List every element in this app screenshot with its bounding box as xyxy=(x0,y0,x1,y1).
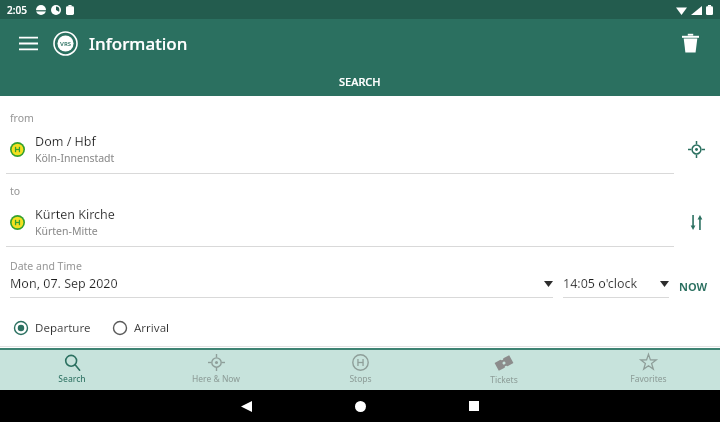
staticText: VRS xyxy=(60,40,72,48)
staticText: to xyxy=(10,184,21,198)
button[interactable]: Recent apps xyxy=(454,390,494,422)
button[interactable]: Dom / Hbf xyxy=(0,127,720,173)
button[interactable]: Arrival xyxy=(111,316,172,340)
button[interactable]: Kürten Kirche xyxy=(0,200,720,246)
staticText: 14:05 o'clock xyxy=(563,275,638,292)
button[interactable]: Use current location xyxy=(676,129,716,169)
button[interactable]: Swap origin and destination xyxy=(676,202,716,242)
staticText: Search xyxy=(58,373,86,385)
button[interactable]: Home xyxy=(340,390,380,422)
staticText: Departure xyxy=(35,320,91,336)
button[interactable]: Clear xyxy=(670,23,710,63)
staticText: from xyxy=(10,111,34,125)
staticText: Tickets xyxy=(490,374,518,386)
staticText: 2:05 xyxy=(7,3,27,17)
button[interactable]: NOW xyxy=(669,279,710,294)
button[interactable]: Search xyxy=(0,350,144,390)
staticText: Arrival xyxy=(134,320,170,336)
staticText: Dom / Hbf xyxy=(35,133,96,150)
button[interactable]: Mon, 07. Sep 2020 xyxy=(10,275,553,292)
button[interactable]: SEARCH xyxy=(0,67,720,99)
staticText: Kürten-Mitte xyxy=(35,224,98,238)
button[interactable]: 14:05 o'clock xyxy=(563,275,669,292)
staticText: NOW xyxy=(679,279,708,294)
staticText: Mon, 07. Sep 2020 xyxy=(10,275,118,292)
button[interactable]: Tickets xyxy=(432,350,576,390)
staticText: Here & Now xyxy=(192,373,240,385)
staticText: Information xyxy=(89,32,188,55)
staticText: Stops xyxy=(349,373,372,385)
button[interactable]: Favorites xyxy=(576,350,720,390)
staticText: SEARCH xyxy=(339,74,381,89)
button[interactable]: Back xyxy=(226,390,266,422)
staticText: Date and Time xyxy=(10,259,82,273)
button[interactable]: Open navigation menu xyxy=(8,23,48,63)
staticText: Köln-Innenstadt xyxy=(35,151,115,165)
staticText: Favorites xyxy=(630,373,667,385)
button[interactable]: Stops xyxy=(288,350,432,390)
button[interactable]: Here & Now xyxy=(144,350,288,390)
button[interactable]: Departure xyxy=(12,316,93,340)
staticText: Kürten Kirche xyxy=(35,206,115,223)
